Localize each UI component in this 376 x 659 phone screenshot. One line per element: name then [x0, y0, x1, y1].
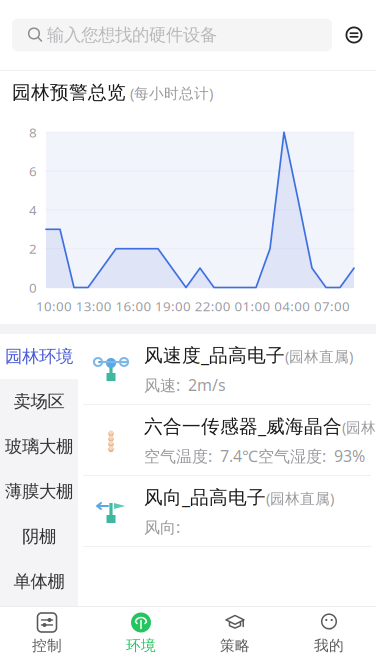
button[interactable]: 单体棚	[0, 559, 78, 604]
staticText: 0	[29, 279, 37, 296]
staticText: (园林直属)	[266, 488, 334, 508]
staticText: 10:00	[36, 297, 72, 315]
staticText: 输入您想找的硬件设备	[47, 24, 217, 46]
button[interactable]: 卖场区	[0, 379, 78, 424]
staticText: 22:00	[195, 297, 231, 315]
staticText: 6	[29, 162, 37, 180]
staticText: 我的	[314, 636, 344, 654]
button[interactable]: 风向_品高电子	[78, 476, 376, 546]
button[interactable]: 环境	[94, 607, 188, 659]
button[interactable]: 六合一传感器_威海晶合	[78, 405, 376, 475]
button[interactable]: 策略	[188, 607, 282, 659]
staticText: 风速度_品高电子	[144, 342, 285, 367]
staticText: 13:00	[76, 297, 112, 315]
staticText: 环境	[126, 636, 156, 654]
staticText: 风速: 2m/s	[144, 374, 226, 395]
staticText: 01:00	[234, 297, 270, 315]
staticText: 07:00	[314, 297, 350, 315]
staticText: 风向_品高电子	[144, 484, 266, 509]
staticText: 控制	[32, 636, 62, 654]
staticText: 19:00	[155, 297, 191, 315]
button[interactable]: 控制	[0, 607, 94, 659]
staticText: 卖场区	[13, 391, 64, 412]
button[interactable]: 薄膜大棚	[0, 469, 78, 514]
staticText: 策略	[220, 636, 250, 654]
staticText: 园林环境	[5, 346, 73, 367]
staticText: 玻璃大棚	[5, 436, 73, 457]
staticText: 8	[29, 123, 37, 141]
staticText: (园林直属)	[285, 346, 353, 366]
staticText: 薄膜大棚	[5, 481, 73, 502]
staticText: 16:00	[115, 297, 151, 315]
staticText: 4	[29, 201, 37, 219]
staticText: 04:00	[274, 297, 310, 315]
button[interactable]: 玻璃大棚	[0, 424, 78, 469]
button[interactable]: 我的	[282, 607, 376, 659]
staticText: 2	[29, 240, 37, 257]
staticText: 空气湿度: 93%	[258, 445, 365, 466]
staticText: 单体棚	[13, 571, 64, 592]
staticText: 园林预警总览	[12, 81, 126, 104]
button[interactable]: 阴棚	[0, 514, 78, 559]
staticText: (园林直属)	[342, 417, 376, 437]
staticText: 六合一传感器_威海晶合	[144, 413, 342, 438]
staticText: (每小时总计)	[126, 83, 213, 103]
staticText: 阴棚	[22, 526, 56, 547]
staticText: 风向:	[144, 516, 180, 537]
button[interactable]: 筛选	[337, 18, 371, 52]
button[interactable]: 风速度_品高电子	[78, 334, 376, 404]
button[interactable]: 园林环境	[0, 334, 78, 379]
staticText: 空气温度: 7.4℃	[144, 445, 258, 466]
